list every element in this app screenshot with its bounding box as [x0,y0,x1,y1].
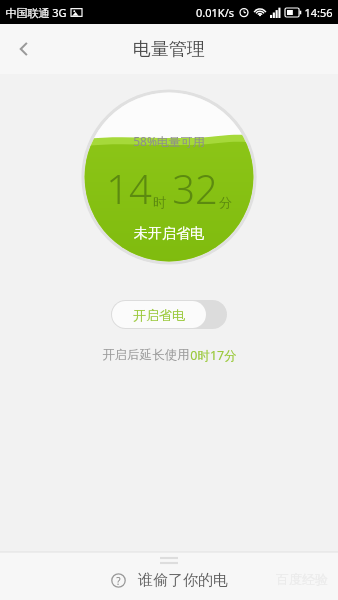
staticText: ? [116,574,121,588]
staticText: 开启后延长使用 [102,347,190,363]
staticText: 电量管理 [133,38,205,61]
staticText: 58%电量可用 [133,133,205,149]
staticText: 0.01K/s [196,5,234,20]
staticText: 时 [153,194,166,210]
button[interactable]: Back [0,25,48,73]
staticText: 百度经验 [276,571,328,587]
button[interactable]: 开启省电 [111,300,227,329]
staticText: 0时17分 [190,347,237,364]
staticText: 32 [172,161,218,215]
staticText: 中国联通 3G [5,5,67,20]
staticText: 未开启省电 [134,225,204,243]
staticText: 14 [106,161,152,215]
staticText: 谁偷了你的电 [138,571,228,590]
button[interactable]: ? [111,571,228,590]
staticText: 分 [219,194,232,210]
staticText: 14:56 [304,5,333,20]
staticText: 开启省电 [133,307,185,323]
